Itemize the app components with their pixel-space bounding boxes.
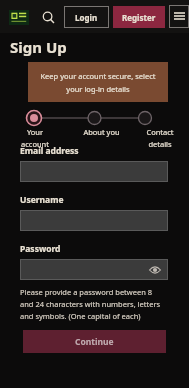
button[interactable]: Search	[39, 8, 57, 26]
staticText: Continue	[75, 336, 114, 348]
staticText: Your account	[12, 127, 58, 150]
button[interactable]: About you	[80, 127, 122, 137]
button[interactable]: Show password	[20, 259, 168, 280]
button[interactable]	[20, 210, 168, 231]
button[interactable]: Register	[113, 6, 165, 28]
button[interactable]: Home logo	[8, 8, 30, 26]
button[interactable]: Contact details	[143, 127, 177, 150]
button[interactable]: Menu	[169, 5, 189, 28]
staticText: Password	[20, 243, 61, 255]
button[interactable]: Login	[64, 6, 109, 28]
button[interactable]: Continue	[23, 330, 166, 353]
staticText: Email address	[20, 145, 79, 157]
staticText: Please provide a password between 8 and …	[20, 287, 167, 322]
staticText: Login	[75, 12, 98, 23]
staticText: Contact details	[143, 127, 177, 150]
staticText: Sign Up	[10, 37, 67, 57]
button[interactable]: Your account	[12, 127, 58, 150]
button[interactable]: Show password	[148, 263, 162, 277]
staticText: Register	[122, 12, 156, 23]
staticText: Username	[20, 194, 64, 206]
staticText: Keep your account secure, select your lo…	[36, 71, 160, 94]
staticText: About you	[83, 127, 120, 137]
button[interactable]	[20, 161, 168, 182]
